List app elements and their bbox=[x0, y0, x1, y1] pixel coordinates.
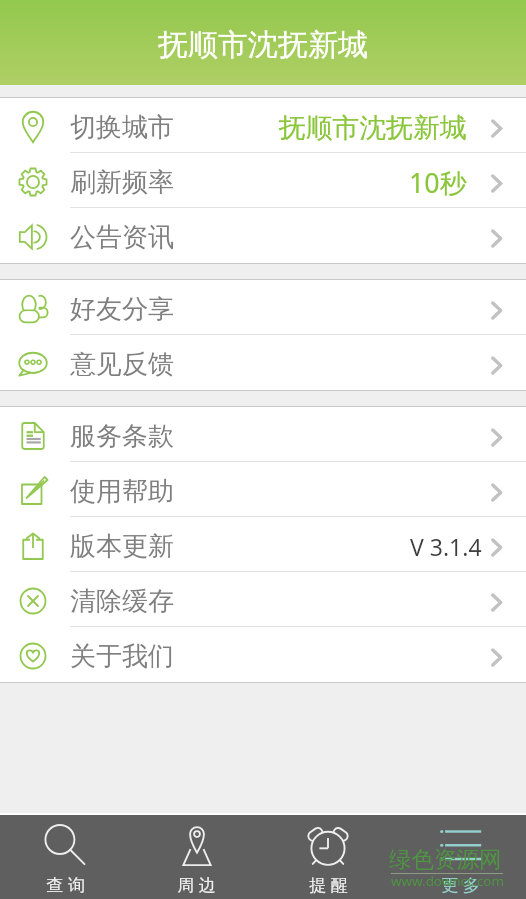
staticText: 服务条款 bbox=[70, 420, 174, 453]
button[interactable]: 意见反馈 bbox=[0, 335, 526, 390]
button[interactable]: Reminder bbox=[262, 815, 394, 899]
button[interactable]: 好友分享 bbox=[0, 280, 526, 335]
button[interactable]: 公告资讯 bbox=[0, 208, 526, 263]
staticText: 周 边 bbox=[177, 873, 216, 896]
staticText: 10秒 bbox=[409, 164, 467, 201]
staticText: 使用帮助 bbox=[70, 475, 174, 508]
button[interactable]: 关于我们 bbox=[0, 627, 526, 682]
staticText: 关于我们 bbox=[70, 640, 174, 673]
staticText: 公告资讯 bbox=[70, 221, 174, 254]
staticText: www.downcc.com bbox=[391, 872, 504, 890]
button[interactable]: 版本更新 bbox=[0, 517, 526, 572]
staticText: 切换城市 bbox=[70, 111, 174, 144]
button[interactable]: 切换城市 bbox=[0, 98, 526, 153]
staticText: 意见反馈 bbox=[70, 348, 174, 381]
button[interactable]: 刷新频率 bbox=[0, 153, 526, 208]
staticText: 抚顺市沈抚新城 bbox=[158, 26, 368, 64]
staticText: 好友分享 bbox=[70, 293, 174, 326]
staticText: 清除缓存 bbox=[70, 585, 174, 618]
staticText: 查 询 bbox=[46, 873, 85, 896]
staticText: 更 多 bbox=[441, 873, 480, 896]
button[interactable]: Search bbox=[0, 815, 131, 899]
staticText: 绿色资源网 bbox=[389, 845, 502, 873]
button[interactable]: More bbox=[394, 815, 526, 899]
button[interactable]: 服务条款 bbox=[0, 407, 526, 462]
button[interactable]: 清除缓存 bbox=[0, 572, 526, 627]
staticText: 提 醒 bbox=[309, 873, 348, 896]
staticText: 抚顺市沈抚新城 bbox=[279, 111, 467, 145]
button[interactable]: Nearby bbox=[131, 815, 262, 899]
button[interactable]: 使用帮助 bbox=[0, 462, 526, 517]
staticText: 版本更新 bbox=[70, 530, 174, 563]
staticText: V 3.1.4 bbox=[410, 531, 482, 562]
staticText: 刷新频率 bbox=[70, 166, 174, 199]
